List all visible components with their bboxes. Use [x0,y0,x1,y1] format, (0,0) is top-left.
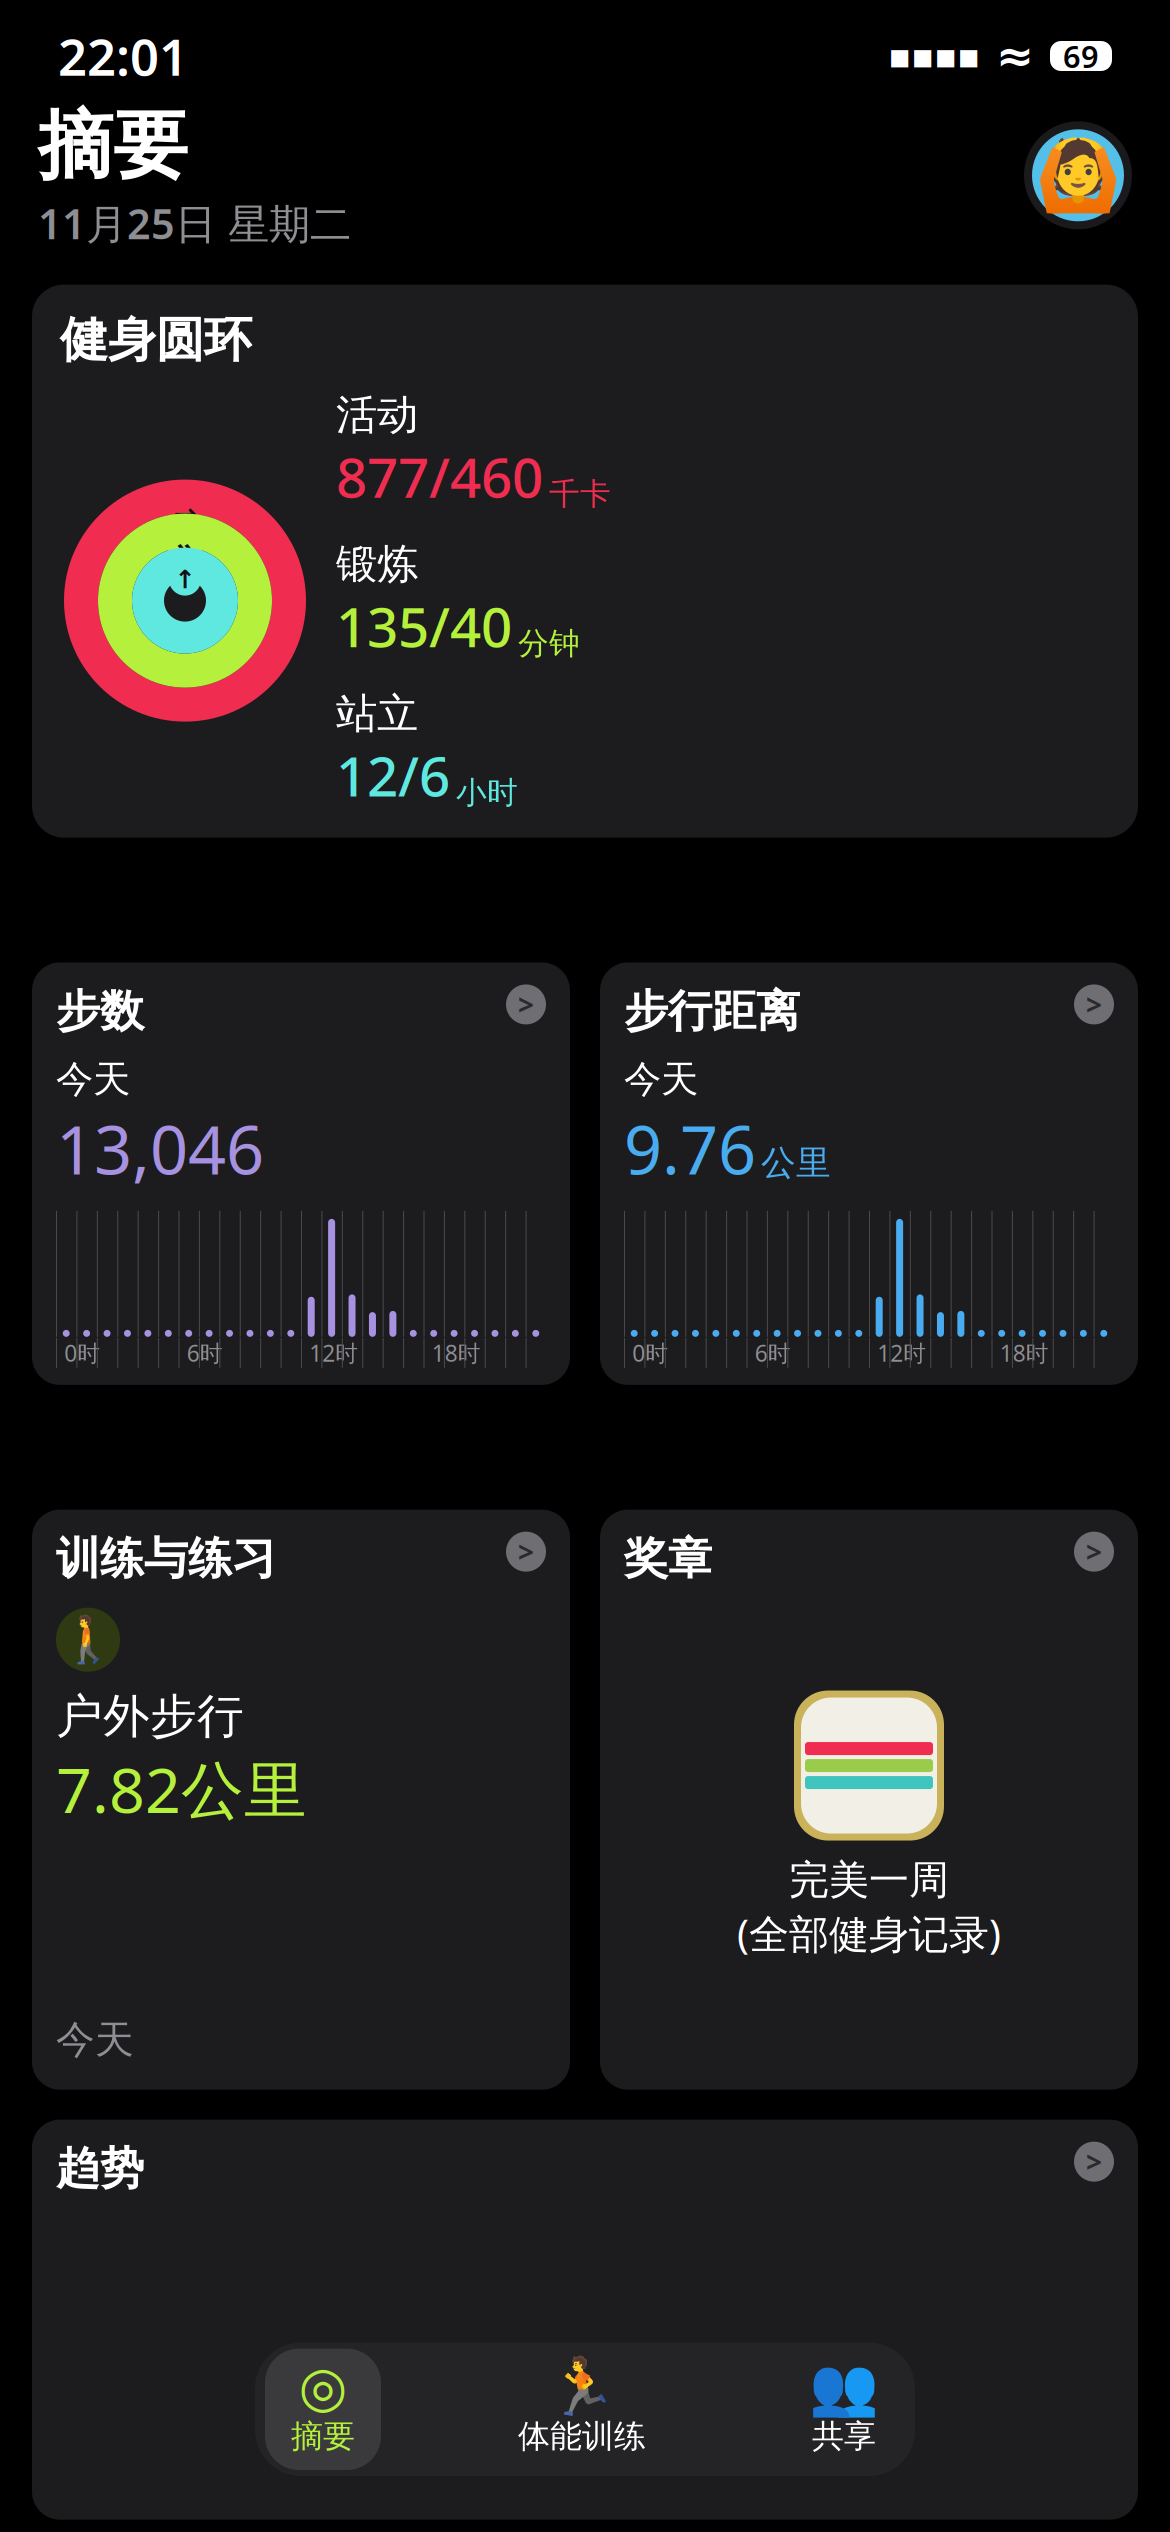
staticText: 69 [1063,36,1099,76]
button[interactable]: 趋势 [32,2120,1138,2520]
button[interactable]: 训练与练习 [32,1510,570,2090]
staticText: 健身圆环 [60,311,252,370]
staticText: 步数 [56,984,144,1038]
staticText: > [1086,1533,1102,1570]
staticText: 今天 [56,1056,130,1102]
staticText: 训练与练习 [56,1532,276,1586]
staticText: 135/40 [336,590,512,662]
staticText: ▪▪▪▪ [888,36,980,76]
staticText: → [173,498,196,529]
staticText: 千卡 [549,475,611,513]
staticText: 18时 [432,1338,481,1368]
staticText: 22:01 [58,22,188,90]
button[interactable]: ◎ [265,2349,381,2470]
staticText: 摘要 [291,2417,355,2456]
staticText: 活动 [336,390,418,440]
staticText: 9.76 [624,1104,756,1193]
staticText: 12时 [877,1338,926,1368]
staticText: 小时 [456,774,518,812]
button[interactable]: 个人资料 [1024,121,1132,229]
staticText: > [518,986,534,1023]
staticText: 公里 [761,1142,831,1184]
staticText: 7.82公里 [56,1747,307,1830]
staticText: 12时 [309,1338,358,1368]
staticText: 👥 [809,2355,879,2419]
staticText: > [518,1533,534,1570]
staticText: 🚶 [60,1614,116,1666]
button[interactable]: 🏃 [492,2349,672,2470]
staticText: 分钟 [518,625,580,662]
button[interactable]: 👥 [783,2349,905,2470]
button[interactable]: 健身圆环 [32,285,1138,838]
staticText: 奖章 [624,1532,712,1586]
staticText: 锻炼 [336,539,418,590]
staticText: ≈ [996,30,1034,82]
button[interactable]: 奖章 [600,1510,1138,2090]
staticText: 完美一周 [789,1855,949,1905]
staticText: 18时 [1000,1338,1049,1368]
staticText: » [176,529,193,566]
staticText: 12/6 [336,739,450,812]
staticText: 趋势 [56,2142,144,2196]
staticText: (全部健身记录) [737,1907,1001,1960]
staticText: 共享 [812,2417,876,2456]
staticText: 0时 [64,1338,100,1368]
staticText: 6时 [187,1338,223,1368]
staticText: > [1086,986,1102,1023]
staticText: > [1086,2143,1102,2180]
staticText: 户外步行 [56,1688,244,1745]
staticText: 🙆 [1035,136,1121,215]
staticText: 6时 [755,1338,791,1368]
staticText: 体能训练 [518,2417,646,2456]
staticText: 877/460 [336,440,543,513]
staticText: 今天 [624,1056,698,1102]
staticText: 站立 [336,688,418,739]
staticText: 摘要 [38,100,188,192]
staticText: ◎ [298,2355,347,2418]
staticText: 步行距离 [624,984,800,1038]
staticText: 0时 [632,1338,668,1368]
staticText: 13,046 [56,1104,264,1193]
staticText: 11月25日 星期二 [38,196,351,251]
button[interactable]: 步数 [32,962,570,1385]
staticText: 今天 [56,2016,134,2064]
staticText: ↑ [174,565,195,594]
staticText: 🏃 [547,2355,617,2419]
button[interactable]: 步行距离 [600,962,1138,1385]
